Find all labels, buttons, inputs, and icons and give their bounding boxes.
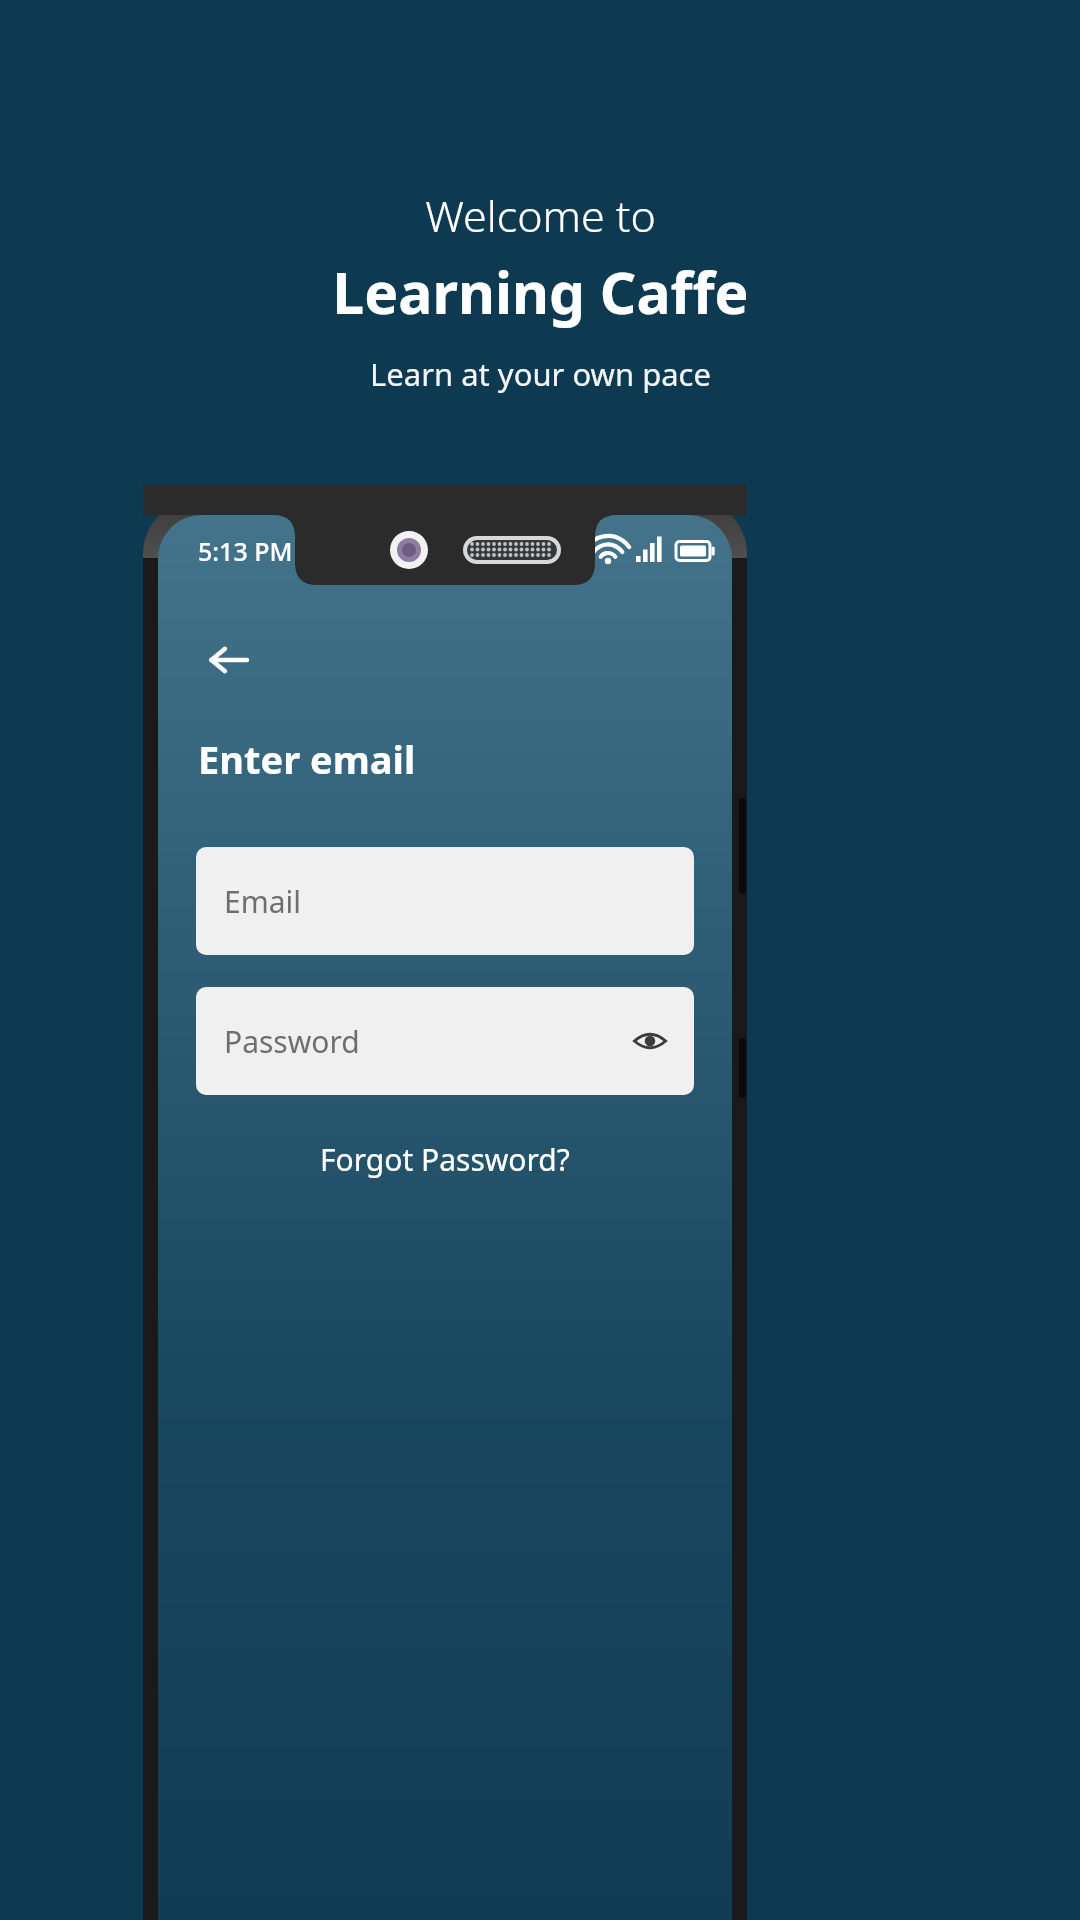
button[interactable]: Forgot Password? (304, 1131, 586, 1188)
staticText: 5:13 PM (198, 534, 293, 568)
staticText: Learning Caffe (332, 253, 749, 331)
button[interactable]: Email (196, 847, 694, 955)
button[interactable]: Show password (622, 1013, 678, 1069)
staticText: Email (224, 881, 302, 922)
staticText: Welcome to (425, 186, 656, 245)
button[interactable]: Password (196, 987, 694, 1095)
button[interactable]: Back (198, 629, 260, 691)
staticText: Forgot Password? (320, 1139, 570, 1180)
staticText: Enter email (198, 733, 416, 785)
staticText: Learn at your own pace (370, 353, 711, 395)
staticText: Password (224, 1021, 360, 1062)
